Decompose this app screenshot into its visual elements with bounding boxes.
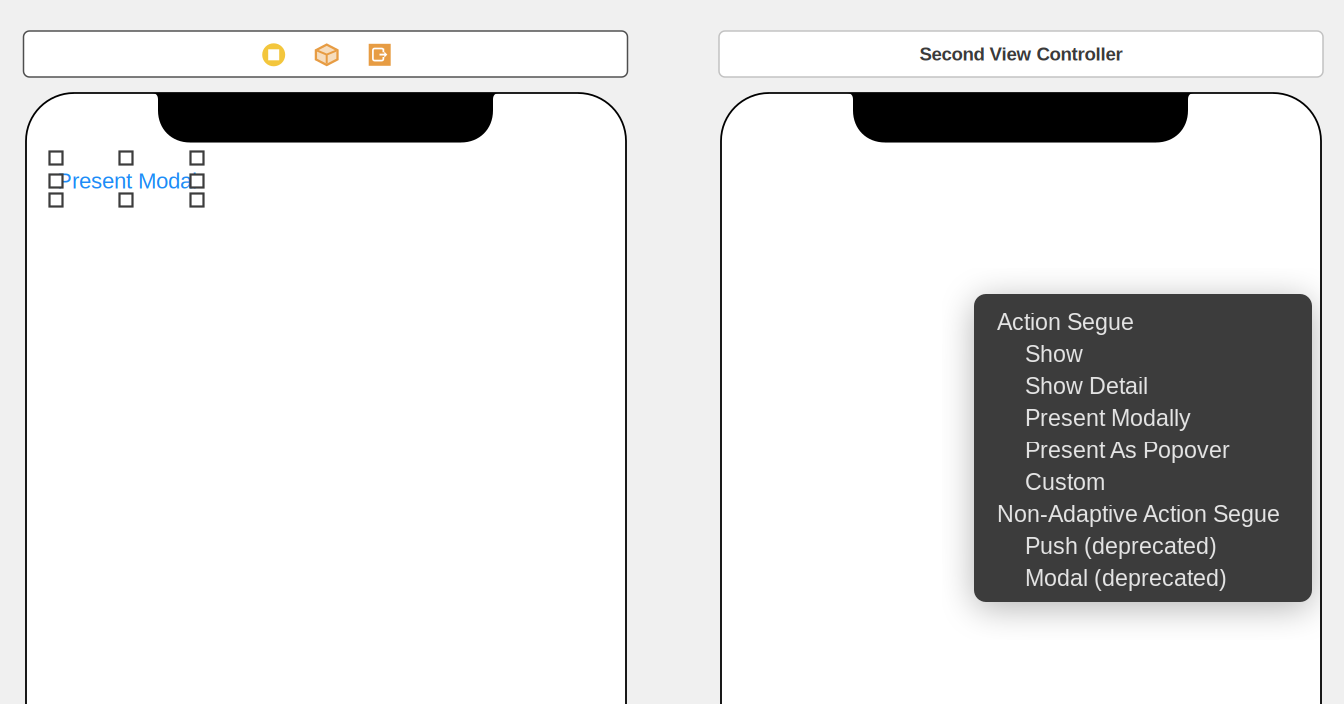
staticText: Present As Popover	[1025, 437, 1230, 463]
button[interactable]: Modal (deprecated)	[974, 562, 1312, 594]
staticText: Push (deprecated)	[1025, 533, 1217, 559]
staticText: Custom	[1025, 469, 1105, 495]
button[interactable]: First Responder	[314, 42, 340, 68]
staticText: Non-Adaptive Action Segue	[997, 501, 1280, 527]
button[interactable]: Show Detail	[974, 370, 1312, 402]
button[interactable]: Custom	[974, 466, 1312, 498]
staticText: Show	[1025, 341, 1083, 367]
staticText: Present Modally	[1025, 405, 1191, 431]
staticText: Modal (deprecated)	[1025, 565, 1227, 591]
staticText: Action Segue	[997, 309, 1134, 335]
button[interactable]: View Controller	[261, 42, 287, 68]
staticText: Show Detail	[1025, 373, 1148, 399]
button[interactable]: Exit	[367, 42, 393, 68]
staticText: Second View Controller	[919, 44, 1122, 64]
staticText: Present Modal	[57, 168, 197, 193]
button[interactable]: Push (deprecated)	[974, 530, 1312, 562]
button[interactable]: Non-Adaptive Action Segue	[974, 498, 1312, 530]
button[interactable]: Present Modally	[974, 402, 1312, 434]
button[interactable]: Show	[974, 338, 1312, 370]
button[interactable]: Action Segue	[974, 306, 1312, 338]
button[interactable]: Present As Popover	[974, 434, 1312, 466]
button[interactable]: Present Modal	[57, 166, 217, 196]
